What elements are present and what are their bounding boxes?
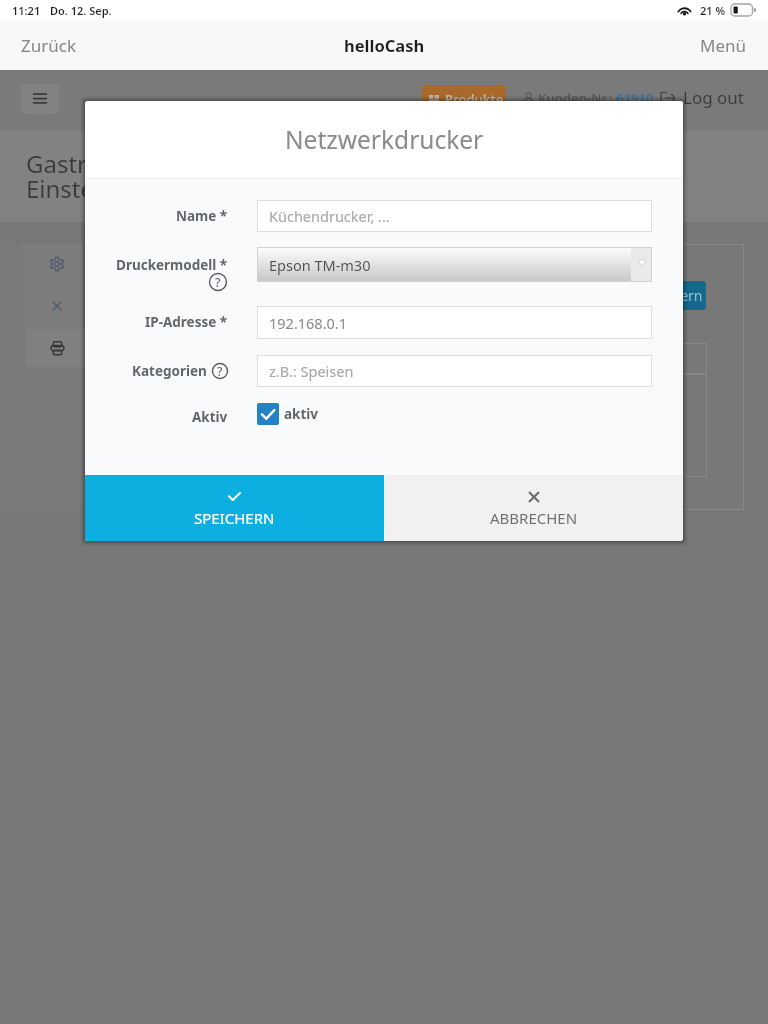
staticText: Log out — [683, 86, 744, 109]
staticText: z.B.: Speisen — [269, 361, 354, 381]
staticText: Gastronomie Einstellungen — [26, 147, 180, 205]
button[interactable]: Settings — [39, 246, 75, 282]
button[interactable]: Epson TM-m30 — [257, 247, 652, 282]
staticText: SPEICHERN — [194, 508, 275, 528]
staticText: Do. 12. Sep. — [50, 3, 112, 18]
button[interactable]: SPEICHERN — [85, 475, 384, 541]
staticText: aktiv — [284, 405, 319, 423]
staticText: ? — [217, 363, 223, 379]
button[interactable]: Produkte — [422, 85, 506, 112]
staticText: helloCash — [344, 34, 425, 56]
staticText: Speichern — [637, 286, 703, 305]
staticText: Name * — [176, 207, 228, 225]
button[interactable]: aktiv — [257, 403, 279, 425]
button[interactable]: Menu — [21, 84, 59, 114]
staticText: ? — [215, 274, 221, 290]
button[interactable]: Menü — [696, 28, 751, 63]
button[interactable]: Log out — [660, 86, 744, 109]
staticText: Produkte — [445, 90, 504, 108]
button[interactable]: Zurück — [17, 28, 80, 63]
staticText: Aktiv — [192, 408, 228, 426]
staticText: 61910 — [616, 89, 654, 107]
staticText: Menü — [700, 34, 747, 57]
staticText: Druckermodell * — [116, 256, 228, 274]
button[interactable]: ABBRECHEN — [384, 475, 683, 541]
staticText: 11:21 — [12, 3, 41, 18]
button[interactable]: z.B.: Speisen — [257, 355, 652, 387]
button[interactable]: Küchendrucker, ... — [257, 200, 652, 232]
staticText: 21 % — [700, 3, 726, 18]
button[interactable]: Speichern — [630, 281, 706, 310]
staticText: Epson TM-m30 — [269, 255, 371, 275]
staticText: Zurück — [21, 34, 76, 57]
button[interactable]: 192.168.0.1 — [257, 306, 652, 339]
button[interactable]: Print — [26, 329, 89, 367]
staticText: 192.168.0.1 — [269, 313, 348, 333]
staticText: Netzwerkdrucker — [285, 123, 484, 156]
button[interactable]: Close — [39, 288, 75, 324]
staticText: IP-Adresse * — [145, 313, 228, 331]
other: Open dropdown — [631, 247, 652, 282]
staticText: Kategorien — [132, 362, 207, 380]
staticText: Küchendrucker, ... — [269, 206, 390, 226]
staticText: Kunden-Nr.: — [538, 89, 616, 107]
staticText: ABBRECHEN — [490, 508, 578, 528]
